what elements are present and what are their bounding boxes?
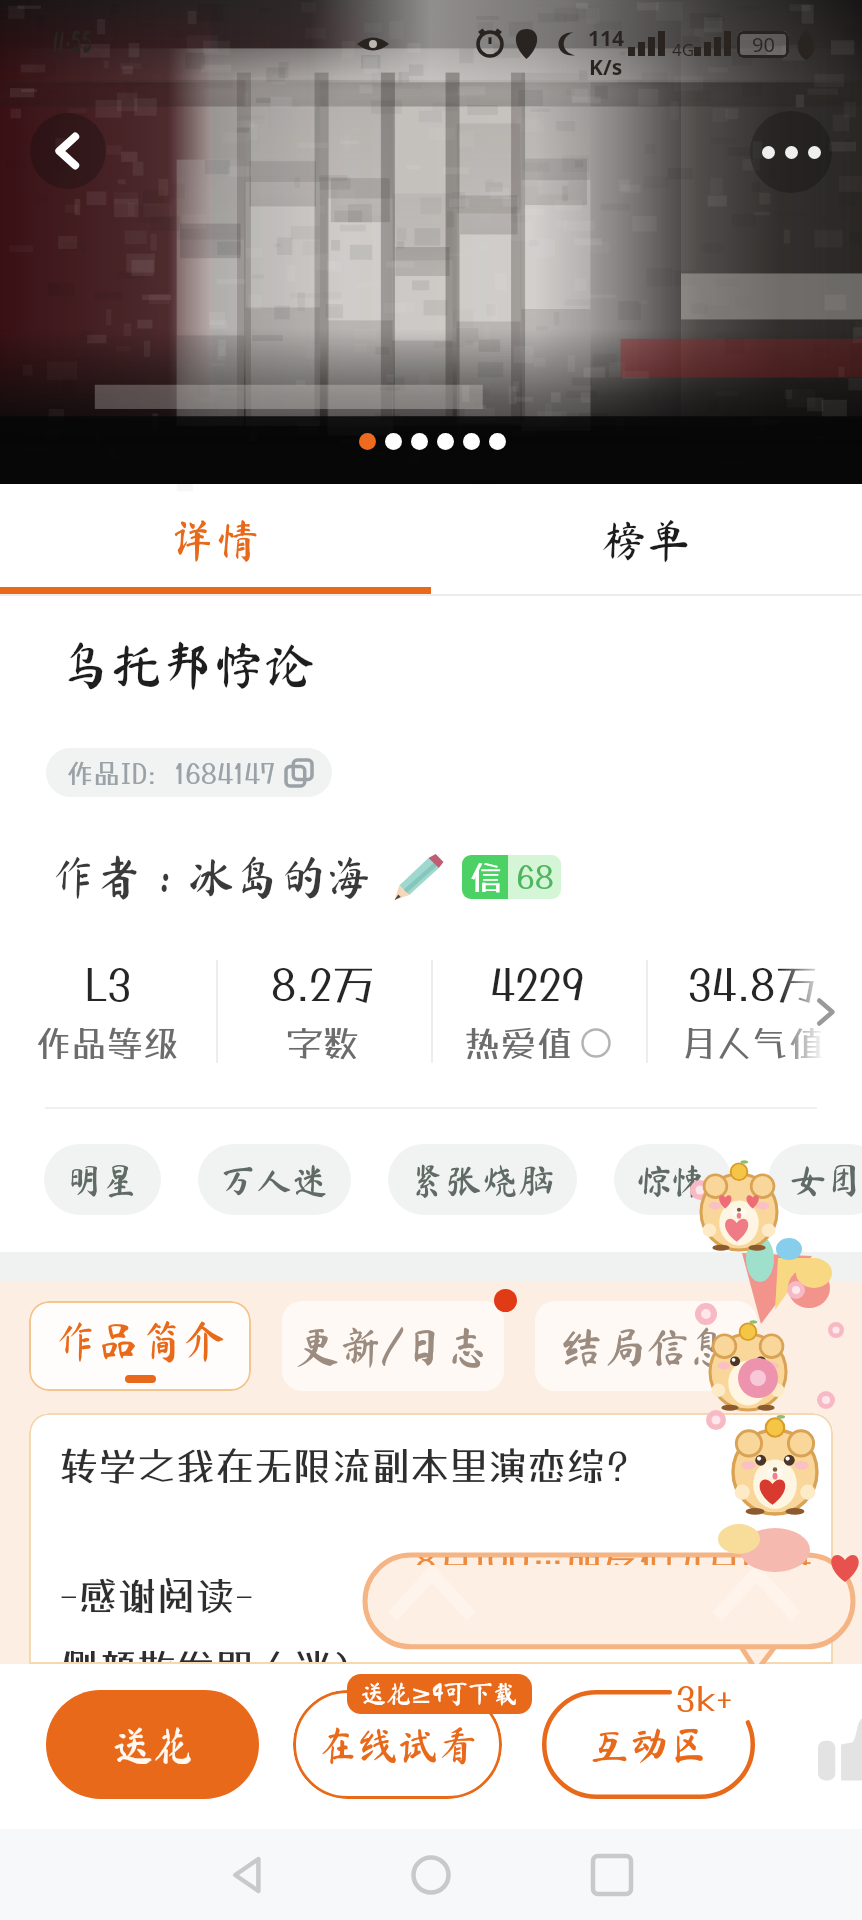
button[interactable]: 34.8万 xyxy=(645,952,860,1068)
staticText: 作品等级 xyxy=(35,1022,180,1064)
staticText: 在线试看 xyxy=(318,1725,478,1765)
button[interactable]: 女团 xyxy=(768,1144,862,1215)
staticText: 更新/日志 xyxy=(296,1325,490,1368)
button[interactable]: 惊悚 xyxy=(614,1144,731,1215)
staticText: L3 xyxy=(85,960,131,1010)
staticText: 互动区 xyxy=(589,1725,709,1765)
staticText: 11:55 xyxy=(52,28,93,57)
button[interactable]: 结局信息 xyxy=(535,1301,757,1391)
button[interactable]: 明星 xyxy=(44,1144,161,1215)
staticText: 4229 xyxy=(490,960,585,1010)
staticText: 34.8万 xyxy=(688,960,818,1010)
staticText: 转学之我在无限流副本里演恋综？ xyxy=(59,1443,645,1489)
staticText: 惊悚 xyxy=(636,1162,709,1198)
other: Like xyxy=(818,1712,862,1784)
staticText: 女团 xyxy=(790,1162,862,1198)
staticText: 送花 xyxy=(113,1725,193,1765)
other: More stats xyxy=(808,995,842,1029)
staticText: 作品ID：1684147 xyxy=(66,757,276,789)
staticText: 紧张烧脑 xyxy=(410,1162,555,1198)
button[interactable]: Home xyxy=(386,1830,476,1920)
button[interactable]: 榜单 xyxy=(431,484,862,594)
staticText: 字数 xyxy=(287,1022,360,1064)
button[interactable]: 更新/日志 xyxy=(282,1301,504,1391)
staticText: 榜单 xyxy=(601,517,692,562)
button[interactable]: 作品ID：1684147 xyxy=(46,748,332,797)
button[interactable]: Recent apps xyxy=(567,1830,657,1920)
button[interactable]: L3 xyxy=(0,952,215,1068)
staticText: 详情 xyxy=(170,517,261,562)
staticText: 明星 xyxy=(66,1162,139,1198)
button[interactable]: 作品简介 xyxy=(29,1301,251,1391)
button[interactable]: 在线试看 xyxy=(293,1690,502,1799)
staticText: 信 xyxy=(469,858,502,897)
staticText: 侧颜散发即人迷） xyxy=(59,1645,372,1664)
staticText: 4G xyxy=(672,38,695,61)
staticText: 结局信息 xyxy=(560,1325,732,1368)
staticText: K/s xyxy=(589,53,623,82)
button[interactable]: Back xyxy=(30,113,106,189)
staticText: 8.2万 xyxy=(271,960,375,1010)
button[interactable]: 送花 xyxy=(46,1690,259,1799)
staticText: 114 xyxy=(588,24,625,53)
button[interactable]: 乌托邦悖论 xyxy=(60,639,316,690)
staticText: 热爱值 xyxy=(464,1022,573,1064)
button[interactable]: 紧张烧脑 xyxy=(388,1144,577,1215)
staticText: 作品简介 xyxy=(54,1319,226,1362)
staticText: 3k+ xyxy=(676,1678,733,1718)
staticText: 万人迷 xyxy=(220,1162,329,1198)
staticText: 90 xyxy=(752,31,775,58)
button[interactable]: More options xyxy=(750,111,832,193)
button[interactable]: 信 xyxy=(462,855,561,899)
button[interactable]: Back xyxy=(203,1830,293,1920)
staticText: 送花≥4可下载 xyxy=(361,1680,518,1709)
staticText: -感谢阅读- xyxy=(59,1573,255,1619)
button[interactable]: 作者：冰岛的海 xyxy=(50,854,372,900)
button[interactable]: 8.2万 xyxy=(215,952,430,1068)
button[interactable]: 送花≥4可下载 xyxy=(347,1674,532,1714)
button[interactable]: 互动区 xyxy=(542,1690,755,1799)
button[interactable]: 4229 xyxy=(430,952,645,1068)
button[interactable]: 万人迷 xyxy=(198,1144,351,1215)
staticText: 8月100…朋友们 4月即将完结 xyxy=(415,1557,815,1565)
staticText: 月人气值 xyxy=(680,1022,825,1064)
staticText: 68 xyxy=(516,858,554,896)
button[interactable]: 详情 xyxy=(0,484,431,594)
